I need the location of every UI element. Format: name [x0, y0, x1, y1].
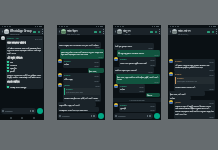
- staticText: আগামী সভার সময়সূচি: [10, 85, 27, 88]
- button[interactable]: More options: [42, 29, 43, 34]
- staticText: Sabbir: [120, 104, 127, 107]
- staticText: 9:41 AM: [35, 38, 42, 40]
- staticText: এই গ্রুপে আলোচনা করার জন্য নিয়মাবলী মেন…: [7, 46, 42, 55]
- button[interactable]: ঠিক আছে: [89, 69, 103, 72]
- staticText: 12:05: [209, 116, 214, 118]
- button[interactable]: Rahim: [175, 60, 214, 71]
- staticText: 12:05: [139, 86, 144, 88]
- button[interactable]: Video call: [207, 31, 210, 33]
- staticText: নিয়ম কানুন মেনে চলার জন্য সকলকে অনুরোধ …: [61, 50, 103, 56]
- staticText: 12:05: [209, 61, 214, 63]
- button[interactable]: Jamal: [64, 84, 100, 101]
- staticText: 12:05: [150, 59, 155, 61]
- button[interactable]: Admin ~ Rk: [7, 37, 42, 88]
- staticText: Admin ~ Rk: [7, 37, 19, 40]
- button[interactable]: Back: [114, 28, 160, 35]
- button[interactable]: ঠিক আছে ভাই সবাই: [170, 92, 204, 95]
- other: Back: [58, 30, 61, 33]
- staticText: সকলকে অনুরোধ করা হচ্ছে যেন নির্ধারিত সময…: [7, 73, 42, 79]
- staticText: সম্মত আছি: [64, 77, 73, 80]
- staticText: সমাজ উন্নয়ন: [67, 29, 78, 33]
- button[interactable]: Sabbir: [120, 58, 155, 66]
- button[interactable]: More options: [103, 29, 104, 34]
- staticText: ধন্যবাদ: [64, 63, 70, 65]
- other: Back: [114, 30, 117, 33]
- staticText: সকল সদস্যদের জানানো: [7, 41, 26, 45]
- button[interactable]: Video call: [150, 31, 153, 33]
- button[interactable]: Karim: [175, 73, 214, 90]
- staticText: 12:05: [95, 85, 100, 87]
- staticText: 12:05: [154, 81, 159, 83]
- staticText: Karim: [175, 73, 182, 76]
- staticText: Message: [62, 115, 70, 117]
- button[interactable]: Nayan: [120, 85, 144, 92]
- staticText: Message: [5, 110, 13, 112]
- staticText: আমাদের বিষয়ে আলোচনা করতে হবে: [177, 80, 198, 82]
- staticText: হ্যাঁ বলুন কী বিষয়ে আলোচনা করবেন: [118, 51, 144, 54]
- button[interactable]: কেউ কি শুনছেন এখানে: [115, 44, 153, 49]
- button[interactable]: Send: [98, 113, 104, 119]
- button[interactable]: আগামীকাল সভায় দেখা হবে সবার সাথে: [59, 108, 98, 111]
- button[interactable]: Send: [154, 113, 160, 119]
- button[interactable]: Sabbir: [120, 104, 155, 111]
- staticText: ধন্যবাদ: [120, 88, 126, 90]
- staticText: 12:05: [150, 64, 155, 66]
- button[interactable]: More options: [159, 29, 160, 34]
- button[interactable]: Karim: [64, 74, 99, 82]
- button[interactable]: হ্যাঁ বলুন কী বিষয়ে আলোচনা করবেন: [118, 51, 159, 56]
- staticText: 12:05: [94, 61, 99, 63]
- staticText: Rahim: [175, 60, 182, 63]
- staticText: 12:05: [148, 47, 153, 49]
- staticText: 12:05: [209, 74, 214, 76]
- staticText: প্রকল্প দল: [123, 29, 131, 33]
- button[interactable]: সবাইকে জানিয়ে দিন আজকেই: [115, 68, 153, 73]
- staticText: 12:05: [94, 80, 99, 82]
- button[interactable]: Rahim: [64, 60, 99, 67]
- staticText: আগামীকাল সভায় দেখা হবে সবার সাথে: [59, 108, 88, 111]
- staticText: 12:05: [139, 90, 144, 92]
- button[interactable]: স্বাগতম: [147, 94, 159, 96]
- button[interactable]: Back: [1, 28, 43, 35]
- button[interactable]: আমি সম্মত আছি ভাই সবাই: [59, 103, 95, 106]
- staticText: WhatsApp Group: [10, 29, 32, 33]
- button[interactable]: Send: [37, 108, 43, 114]
- button[interactable]: Message: [2, 108, 35, 114]
- staticText: সকলে অনুগ্রহ করে আলোচনায় অংশ নিন সবাই ধ…: [59, 43, 99, 46]
- staticText: Rahim: [177, 77, 184, 80]
- button[interactable]: ঠিক আছে আমি সবাইকে বার্তা পাঠিয়ে দিচ্ছি…: [117, 75, 159, 83]
- button[interactable]: নিয়ম কানুন মেনে চলার জন্য সকলকে অনুরোধ …: [61, 50, 103, 58]
- button[interactable]: More options: [216, 29, 217, 34]
- button[interactable]: Message: [59, 113, 96, 119]
- staticText: এই বিষয়ে আমাদের সবার মতামত প্রয়োজন এবং…: [175, 63, 214, 69]
- button[interactable]: Jamal: [175, 101, 214, 118]
- staticText: 12:05: [95, 99, 100, 101]
- button[interactable]: Back: [58, 28, 104, 35]
- staticText: 12:05: [209, 69, 214, 71]
- button[interactable]: Message: [115, 113, 152, 119]
- staticText: 12:05: [150, 105, 155, 107]
- button[interactable]: সকলে অনুগ্রহ করে আলোচনায় অংশ নিন সবাই ধ…: [59, 43, 100, 48]
- staticText: 12:05: [209, 88, 214, 90]
- staticText: 12:05: [150, 109, 155, 111]
- staticText: শুভরাত্রি: [120, 107, 126, 109]
- staticText: 12:05: [94, 75, 99, 77]
- staticText: পূর্বের আলোচনার বিষয়ে একমত: [66, 91, 84, 93]
- staticText: আমি সম্মত আছি ভাই সবাই: [59, 103, 80, 106]
- button[interactable]: Video call: [33, 31, 36, 33]
- staticText: সভা: [10, 61, 14, 63]
- button[interactable]: Video call: [94, 31, 97, 33]
- other: Back: [169, 30, 172, 33]
- button[interactable]: Back: [169, 28, 217, 35]
- staticText: স্বাগতম: [147, 94, 153, 96]
- staticText: পরিকল্পনা: [10, 67, 17, 69]
- staticText: আমরা আজ বিকেলে মিটিং করব সবাই: [120, 61, 148, 64]
- staticText: 12:05: [154, 54, 159, 56]
- button[interactable]: ধন্যবাদ: [170, 97, 190, 99]
